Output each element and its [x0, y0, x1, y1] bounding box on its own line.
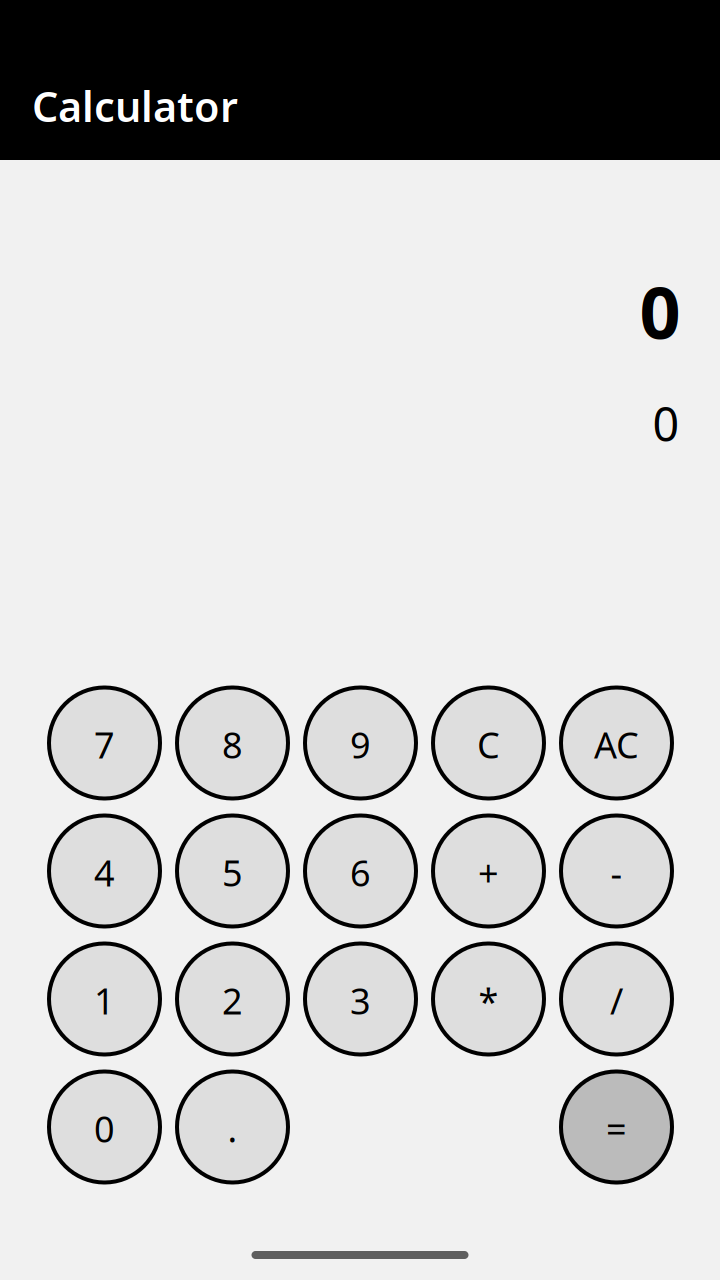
staticText: AC — [594, 721, 639, 768]
button[interactable]: Decimal point — [175, 1069, 290, 1184]
staticText: 7 — [94, 721, 115, 768]
button[interactable]: All clear — [559, 685, 674, 800]
button[interactable]: 1 — [47, 941, 162, 1056]
button[interactable]: Multiply — [431, 941, 546, 1056]
staticText: C — [477, 721, 500, 768]
staticText: Calculator — [32, 79, 238, 133]
staticText: 9 — [350, 721, 371, 768]
staticText: 1 — [94, 977, 115, 1024]
staticText: * — [478, 977, 498, 1024]
staticText: / — [610, 977, 623, 1024]
button[interactable]: 4 — [47, 813, 162, 928]
button[interactable]: 2 — [175, 941, 290, 1056]
button[interactable]: 5 — [175, 813, 290, 928]
button[interactable]: Divide — [559, 941, 674, 1056]
staticText: 5 — [222, 849, 243, 896]
button[interactable]: 8 — [175, 685, 290, 800]
button[interactable]: 9 — [303, 685, 418, 800]
button[interactable]: 3 — [303, 941, 418, 1056]
staticText: 0 — [652, 392, 679, 454]
button[interactable]: 0 — [47, 1069, 162, 1184]
staticText: 6 — [350, 849, 371, 896]
button[interactable]: Minus — [559, 813, 674, 928]
button[interactable]: 7 — [47, 685, 162, 800]
staticText: - — [610, 849, 622, 896]
staticText: 2 — [222, 977, 243, 1024]
staticText: 4 — [94, 849, 115, 896]
staticText: = — [606, 1105, 627, 1152]
button[interactable]: Clear — [431, 685, 546, 800]
button[interactable]: Equals — [559, 1069, 674, 1184]
staticText: 0 — [94, 1105, 115, 1152]
staticText: 0 — [639, 263, 680, 359]
button[interactable]: Plus — [431, 813, 546, 928]
staticText: . — [227, 1105, 237, 1152]
staticText: 8 — [222, 721, 243, 768]
staticText: + — [478, 849, 499, 896]
staticText: 3 — [350, 977, 371, 1024]
button[interactable]: 6 — [303, 813, 418, 928]
